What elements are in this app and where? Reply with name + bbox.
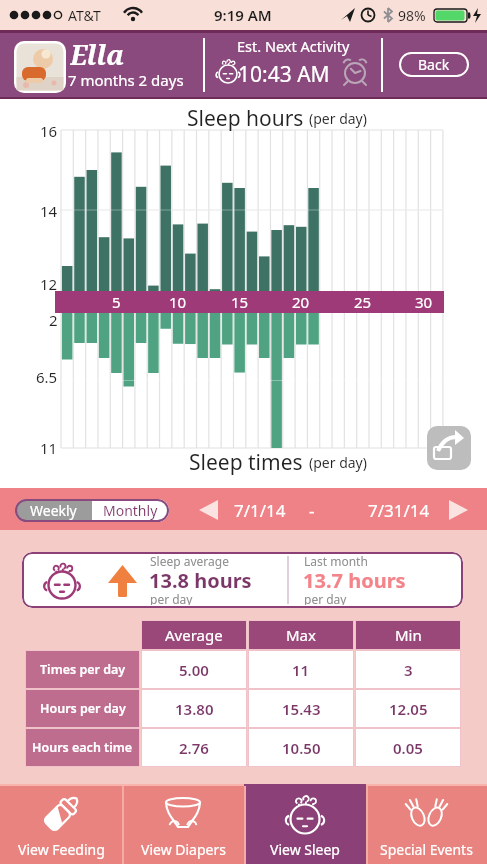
staticText: Weekly [30, 501, 77, 520]
staticText: per day [150, 591, 193, 605]
staticText: (per day) [309, 453, 367, 472]
button[interactable]: Weekly [15, 499, 92, 522]
staticText: 13.8 hours [149, 567, 252, 591]
staticText: 16 [40, 121, 58, 139]
staticText: 10.50 [282, 738, 321, 758]
staticText: 10:43 AM [238, 60, 330, 88]
staticText: AT&T [68, 6, 101, 24]
staticText: Back [418, 55, 450, 74]
staticText: 3 [404, 660, 413, 680]
staticText: 11 [40, 438, 58, 456]
staticText: Min [395, 625, 422, 645]
staticText: Monthly [103, 501, 158, 520]
button[interactable]: Back [399, 52, 469, 77]
staticText: 6.5 [36, 367, 58, 385]
staticText: Sleep times [189, 448, 309, 477]
staticText: Est. Next Activity [237, 36, 350, 56]
staticText: 7 months 2 days [68, 70, 184, 90]
button[interactable]: View Diapers [122, 784, 244, 864]
staticText: - [309, 499, 315, 521]
staticText: Average [165, 625, 223, 645]
staticText: 2 [49, 310, 58, 328]
staticText: 10 [169, 292, 187, 312]
staticText: 13.80 [175, 699, 214, 719]
button[interactable]: Special Events [366, 784, 487, 864]
staticText: 9:19 AM [214, 5, 272, 25]
button[interactable]: Sleep average [22, 552, 463, 608]
button[interactable] [446, 497, 472, 523]
staticText: (per day) [309, 109, 367, 128]
staticText: 98% [398, 6, 426, 24]
staticText: 0.05 [393, 738, 423, 758]
staticText: 11 [292, 660, 310, 680]
staticText: 7/31/14 [368, 499, 430, 521]
staticText: per day [304, 591, 347, 605]
staticText: 7/1/14 [234, 499, 286, 521]
staticText: 15.43 [282, 699, 321, 719]
staticText: 5 [112, 292, 121, 312]
button[interactable] [196, 497, 222, 523]
staticText: Times per day [40, 661, 126, 678]
staticText: 25 [354, 292, 372, 312]
button[interactable]: Monthly [92, 499, 169, 522]
staticText: Hours per day [40, 700, 126, 717]
button[interactable] [14, 41, 66, 93]
staticText: 13.7 hours [303, 567, 406, 591]
staticText: 12 [40, 274, 58, 292]
staticText: 5.00 [179, 660, 209, 680]
staticText: Sleep hours [187, 104, 309, 133]
staticText: Hours each time [32, 739, 133, 756]
staticText: Max [286, 625, 316, 645]
staticText: Last month [304, 553, 368, 569]
staticText: 12.05 [389, 699, 428, 719]
button[interactable] [427, 426, 471, 470]
staticText: 14 [40, 201, 58, 219]
button[interactable]: View Feeding [0, 784, 122, 864]
staticText: Special Events [380, 840, 473, 859]
staticText: 15 [231, 292, 249, 312]
staticText: Sleep average [150, 553, 229, 569]
staticText: Ella [70, 36, 125, 68]
staticText: View Feeding [18, 840, 105, 859]
button[interactable]: View Sleep [244, 784, 366, 864]
staticText: View Diapers [141, 840, 226, 859]
staticText: 30 [415, 292, 433, 312]
staticText: 20 [292, 292, 310, 312]
staticText: 2.76 [179, 738, 209, 758]
staticText: View Sleep [270, 840, 340, 859]
